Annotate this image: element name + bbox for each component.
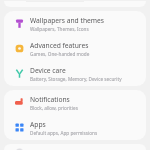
staticText: Block, allow, priorities [30, 105, 78, 111]
button[interactable]: Advanced features [4, 36, 146, 61]
button[interactable]: Apps [4, 115, 146, 140]
button[interactable]: Notifications [4, 90, 146, 115]
other: Wallpapers and themes [15, 19, 24, 28]
staticText: Wallpapers, Themes, Icons [30, 26, 89, 32]
staticText: Default apps, App permissions [30, 130, 98, 136]
staticText: Device care [30, 66, 66, 75]
staticText: Apps [30, 120, 46, 129]
other: Notifications [15, 98, 24, 107]
staticText: Notifications [30, 95, 70, 104]
staticText: Battery, Storage, Memory, Device securit… [30, 76, 122, 82]
button[interactable]: Wallpapers and themes [4, 11, 146, 36]
other: Apps [15, 123, 24, 132]
staticText: Advanced features [30, 41, 89, 50]
other: Lock screen [15, 149, 24, 150]
staticText: Wallpapers and themes [30, 16, 105, 25]
staticText: Games, One-handed mode [30, 51, 90, 57]
other: Advanced features [15, 44, 24, 53]
button[interactable]: Device care [4, 61, 146, 86]
other: Device care [15, 69, 24, 78]
